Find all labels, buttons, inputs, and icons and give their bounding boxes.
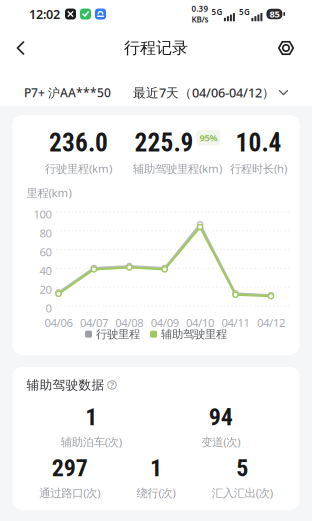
staticText: P7+ 沪AA***50 bbox=[24, 84, 111, 101]
staticText: 里程(km) bbox=[26, 185, 71, 200]
staticText: 60 bbox=[39, 244, 51, 259]
staticText: 5G bbox=[211, 7, 222, 17]
staticText: 100 bbox=[33, 206, 51, 222]
button[interactable]: Back bbox=[0, 32, 27, 64]
staticText: 04/11 bbox=[221, 315, 249, 330]
staticText: 10.4 bbox=[235, 128, 281, 158]
staticText: 0.39 bbox=[191, 3, 208, 14]
staticText: ? bbox=[110, 379, 114, 391]
staticText: 236.0 bbox=[49, 128, 108, 158]
staticText: 04/06 bbox=[44, 315, 72, 330]
staticText: 5G bbox=[239, 7, 250, 17]
staticText: 40 bbox=[39, 263, 51, 278]
button[interactable]: Settings bbox=[277, 33, 312, 63]
staticText: 辅助驾驶里程(km) bbox=[133, 161, 222, 176]
staticText: 04/07 bbox=[80, 315, 108, 330]
staticText: 12:02 bbox=[29, 5, 60, 23]
staticText: KB/s bbox=[191, 14, 208, 25]
button[interactable]: P7+ 沪AA***50 bbox=[0, 84, 111, 101]
staticText: 297 bbox=[52, 454, 88, 482]
button[interactable]: 说明 bbox=[107, 380, 116, 389]
staticText: 95% bbox=[199, 131, 217, 144]
staticText: 辅助驾驶数据 bbox=[26, 377, 104, 393]
staticText: 绕行(次) bbox=[136, 485, 175, 500]
staticText: 20 bbox=[39, 282, 51, 297]
staticText: 80 bbox=[39, 225, 51, 241]
staticText: 变道(次) bbox=[201, 434, 240, 449]
button[interactable]: 最近7天（04/06-04/12） bbox=[133, 84, 312, 101]
staticText: 04/12 bbox=[257, 315, 285, 330]
staticText: 辅助泊车(次) bbox=[61, 434, 122, 449]
staticText: 最近7天（04/06-04/12） bbox=[133, 84, 275, 101]
staticText: 85 bbox=[269, 8, 279, 20]
staticText: 04/09 bbox=[151, 315, 179, 330]
staticText: 汇入汇出(次) bbox=[212, 485, 273, 500]
staticText: 辅助驾驶里程 bbox=[161, 327, 227, 341]
staticText: 行驶里程(km) bbox=[45, 161, 112, 176]
staticText: 行驶里程 bbox=[96, 327, 140, 341]
staticText: 225.9 bbox=[134, 128, 193, 158]
staticText: 行程时长(h) bbox=[230, 161, 287, 176]
staticText: 1 bbox=[150, 454, 162, 482]
staticText: 通过路口(次) bbox=[39, 485, 100, 500]
staticText: 04/10 bbox=[186, 315, 214, 330]
staticText: 5 bbox=[236, 454, 248, 482]
staticText: 行程记录 bbox=[124, 38, 188, 58]
staticText: 1 bbox=[85, 403, 97, 431]
staticText: 04/08 bbox=[115, 315, 143, 330]
staticText: 94 bbox=[209, 403, 233, 431]
staticText: 0 bbox=[45, 300, 51, 316]
